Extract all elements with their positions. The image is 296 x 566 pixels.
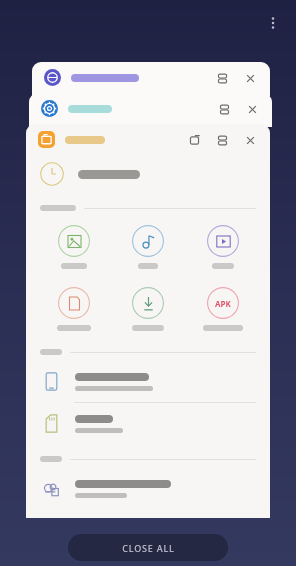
button[interactable]: App icon — [41, 100, 58, 117]
button[interactable]: App icon — [29, 93, 272, 127]
button[interactable]: App icon — [38, 131, 55, 148]
button[interactable]: Documents — [39, 285, 109, 333]
button[interactable]: Close app — [240, 97, 264, 121]
button[interactable]: Split screen view — [210, 66, 234, 90]
button[interactable]: Installation files — [188, 285, 258, 333]
button[interactable]: SD card — [26, 403, 270, 444]
button[interactable]: Pop-up view — [182, 128, 206, 152]
button[interactable]: Internal storage — [26, 361, 270, 402]
button[interactable]: CLOSE ALL — [68, 534, 228, 561]
button[interactable]: More options — [258, 8, 288, 38]
staticText: CLOSE ALL — [122, 542, 175, 554]
button[interactable]: Split screen view — [210, 128, 234, 152]
button[interactable]: Audio — [113, 223, 183, 271]
button[interactable]: App icon — [32, 62, 270, 96]
button[interactable]: Samsung Cloud Drive — [26, 468, 270, 509]
button[interactable]: App icon — [44, 69, 61, 86]
button[interactable]: Downloads — [113, 285, 183, 333]
staticText: APK — [215, 298, 231, 309]
button[interactable]: Split screen view — [212, 97, 236, 121]
button[interactable]: Recent files — [26, 155, 270, 193]
button[interactable]: Videos — [188, 223, 258, 271]
button[interactable]: Close app — [238, 128, 262, 152]
button[interactable]: Images — [39, 223, 109, 271]
button[interactable]: Close app — [238, 66, 262, 90]
